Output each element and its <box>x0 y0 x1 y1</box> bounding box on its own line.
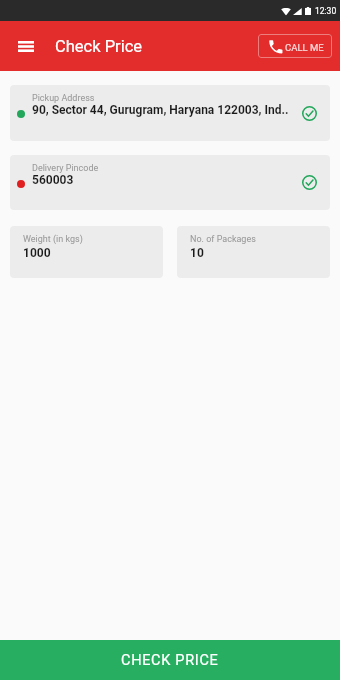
button[interactable]: CHECK PRICE <box>0 640 340 680</box>
button[interactable]: Open navigation menu <box>7 27 45 65</box>
staticText: Check Price <box>55 37 143 56</box>
button[interactable]: Delivery Pincode <box>10 155 330 210</box>
staticText: CHECK PRICE <box>121 652 219 669</box>
button[interactable]: Weight (in kgs) <box>10 226 163 278</box>
staticText: 90, Sector 44, Gurugram, Haryana 122003,… <box>32 103 289 117</box>
staticText: Pickup Address <box>32 93 95 104</box>
staticText: 10 <box>190 246 204 260</box>
staticText: 1000 <box>23 246 51 260</box>
button[interactable]: No. of Packages <box>177 226 330 278</box>
staticText: Delivery Pincode <box>32 163 99 174</box>
staticText: Weight (in kgs) <box>23 234 83 245</box>
button[interactable]: Pickup Address <box>10 85 330 141</box>
staticText: CALL ME <box>285 42 324 53</box>
staticText: 12:30 <box>315 6 337 16</box>
staticText: No. of Packages <box>190 234 256 245</box>
staticText: 560003 <box>32 173 74 187</box>
button[interactable]: CALL ME <box>258 34 332 58</box>
